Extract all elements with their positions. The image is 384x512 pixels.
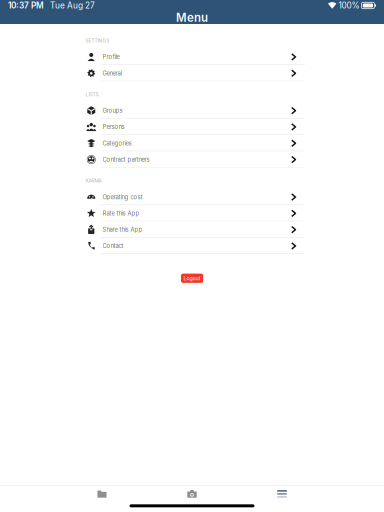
button[interactable]: Camera (162, 486, 222, 501)
staticText: Groups (102, 107, 122, 114)
button[interactable]: Categories (85, 135, 305, 151)
staticText: 100% (336, 0, 361, 10)
staticText: Menu (176, 11, 208, 24)
staticText: Tue Aug 27 (44, 0, 95, 10)
staticText: Logout (184, 275, 201, 281)
staticText: 10:37 PM (8, 0, 44, 10)
staticText: Share this App (102, 226, 142, 233)
button[interactable]: Groups (85, 102, 305, 119)
staticText: Contract partners (102, 156, 149, 163)
button[interactable]: Documents (72, 486, 132, 501)
staticText: Contact (102, 242, 123, 249)
button[interactable]: Share this App (85, 221, 305, 238)
staticText: General (102, 70, 121, 77)
button[interactable]: General (85, 65, 305, 81)
button[interactable]: Menu (252, 486, 312, 501)
staticText: Operating cost (102, 193, 142, 201)
button[interactable]: Logout (181, 274, 203, 283)
staticText: Profile (102, 53, 119, 60)
button[interactable]: Operating cost (85, 189, 305, 205)
button[interactable]: Contract partners (85, 151, 305, 168)
staticText: Rate this App (102, 210, 139, 217)
button[interactable]: Rate this App (85, 205, 305, 221)
staticText: Persons (102, 123, 124, 130)
staticText: Categories (102, 140, 131, 147)
staticText: KARMA (85, 178, 101, 184)
button[interactable]: Contact (85, 238, 305, 254)
staticText: SETTINGS (85, 38, 109, 44)
button[interactable]: Persons (85, 119, 305, 135)
staticText: LISTS (85, 91, 98, 97)
button[interactable]: Profile (85, 49, 305, 65)
